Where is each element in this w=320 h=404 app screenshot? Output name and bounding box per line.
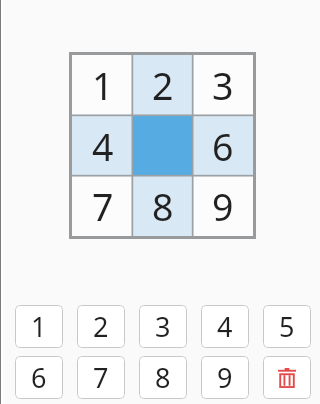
button[interactable]: 4 [72,116,133,176]
button[interactable] [133,116,193,176]
button[interactable]: 1 [15,305,63,348]
staticText: 6 [31,359,47,396]
button[interactable]: 6 [15,356,63,399]
button[interactable]: 7 [77,356,125,399]
button[interactable]: 9 [201,356,249,399]
staticText: 9 [212,181,234,232]
button[interactable]: 2 [133,55,193,116]
staticText: 1 [92,60,114,111]
staticText: 2 [93,308,109,345]
staticText: 7 [92,181,114,232]
staticText: 2 [152,60,174,111]
button[interactable]: 9 [193,176,253,236]
button[interactable]: Erase [263,356,311,399]
staticText: 7 [93,359,109,396]
staticText: 5 [279,308,295,345]
staticText: 4 [92,121,114,172]
staticText: 3 [155,308,171,345]
button[interactable]: 7 [72,176,133,236]
staticText: 8 [152,181,174,232]
button[interactable]: 1 [72,55,133,116]
staticText: 3 [212,60,234,111]
staticText: 4 [217,308,233,345]
button[interactable]: 3 [193,55,253,116]
staticText: 9 [217,359,233,396]
staticText: 8 [155,359,171,396]
button[interactable]: 2 [77,305,125,348]
staticText: 1 [31,308,47,345]
button[interactable]: 3 [139,305,187,348]
button[interactable]: 5 [263,305,311,348]
staticText: 6 [212,121,234,172]
button[interactable]: 8 [139,356,187,399]
button[interactable]: 6 [193,116,253,176]
button[interactable]: 4 [201,305,249,348]
button[interactable]: 8 [133,176,193,236]
